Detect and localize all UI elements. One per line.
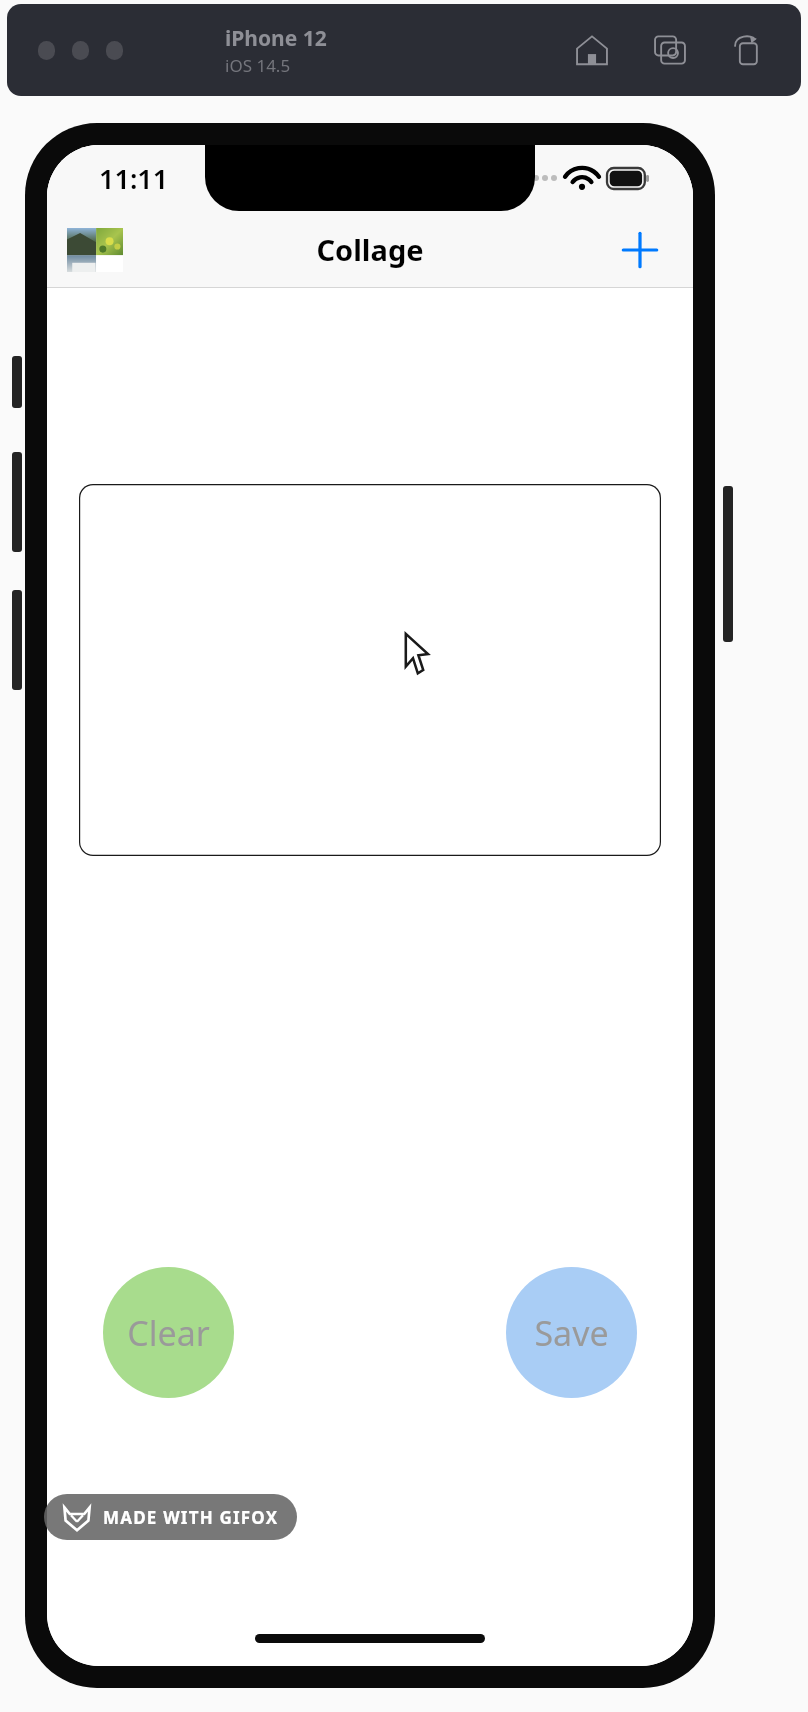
button[interactable]: Screenshot [653, 33, 687, 67]
button[interactable]: Collage preview [67, 228, 123, 272]
staticText: Collage [316, 230, 424, 269]
button[interactable] [72, 41, 89, 60]
staticText: Clear [127, 1310, 210, 1356]
button[interactable]: Add photo [617, 227, 663, 273]
button[interactable] [79, 484, 661, 856]
button[interactable] [38, 41, 55, 60]
staticText: iOS 14.5 [225, 54, 291, 77]
button[interactable] [106, 41, 123, 60]
staticText: 11:11 [99, 160, 169, 197]
button[interactable]: Rotate [731, 33, 765, 67]
button[interactable]: Clear [103, 1267, 234, 1398]
button[interactable]: Home [575, 33, 609, 67]
staticText: Save [534, 1310, 609, 1356]
button[interactable]: Save [506, 1267, 637, 1398]
staticText: iPhone 12 [225, 24, 327, 53]
staticText: MADE WITH GIFOX [103, 1506, 279, 1529]
